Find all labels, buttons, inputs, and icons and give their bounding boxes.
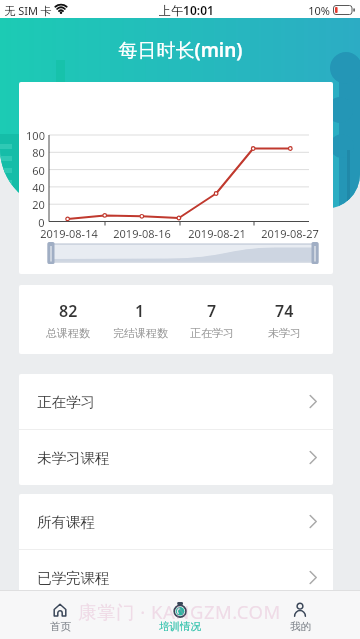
staticText: 2019-08-21 — [188, 226, 246, 240]
staticText: 40 — [32, 180, 45, 194]
button[interactable]: 82 — [32, 285, 104, 354]
staticText: 正在学习 — [190, 326, 234, 340]
staticText: 我的 — [290, 620, 311, 633]
button[interactable]: 未学习课程 — [19, 430, 333, 485]
button[interactable]: 正在学习 — [19, 374, 333, 429]
staticText: 未学习课程 — [37, 449, 110, 467]
staticText: 已学完课程 — [37, 569, 110, 587]
button[interactable]: 1 — [104, 285, 176, 354]
staticText: 20 — [32, 197, 45, 211]
staticText: 上午10:01 — [159, 2, 214, 18]
staticText: 首页 — [50, 620, 71, 633]
button[interactable]: 培训情况 — [120, 591, 240, 639]
staticText: 完结课程数 — [113, 326, 168, 340]
staticText: 10% — [308, 3, 330, 18]
staticText: 74 — [275, 300, 294, 322]
staticText: 60 — [32, 163, 45, 177]
staticText: 无 SIM 卡 — [4, 3, 52, 18]
staticText: 80 — [32, 145, 45, 159]
staticText: 2019-08-16 — [113, 226, 171, 240]
staticText: 82 — [59, 300, 78, 322]
staticText: 1 — [135, 300, 145, 322]
staticText: 培训情况 — [159, 620, 201, 633]
staticText: 2019-08-27 — [261, 226, 319, 240]
staticText: 总课程数 — [46, 326, 90, 340]
button[interactable]: 我的 — [240, 591, 360, 639]
staticText: 2019-08-14 — [40, 226, 98, 240]
staticText: 100 — [26, 128, 45, 142]
staticText: 康掌门 · KANGZM.COM — [78, 599, 281, 624]
button[interactable]: 首页 — [0, 591, 120, 639]
staticText: 每日时长(min) — [118, 37, 243, 63]
button[interactable]: 7 — [176, 285, 248, 354]
button[interactable]: 所有课程 — [19, 494, 333, 549]
staticText: 0 — [38, 215, 45, 229]
staticText: 正在学习 — [37, 393, 95, 411]
button[interactable]: 74 — [248, 285, 320, 354]
staticText: 7 — [207, 300, 217, 322]
staticText: 未学习 — [268, 326, 301, 340]
staticText: 所有课程 — [37, 513, 95, 531]
button[interactable]: 已学完课程 — [19, 550, 333, 605]
